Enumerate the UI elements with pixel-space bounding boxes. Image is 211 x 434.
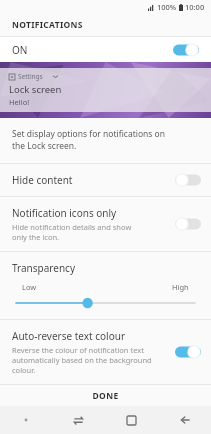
button[interactable]: Settings [0, 68, 211, 112]
staticText: Hide content [12, 173, 73, 187]
button[interactable]: Hide content [0, 164, 211, 196]
staticText: Lock screen [9, 83, 62, 96]
staticText: Reverse the colour of notification text … [12, 345, 169, 375]
button[interactable]: Notification icons only [0, 197, 211, 251]
staticText: 10:00 [185, 2, 205, 12]
staticText: High [172, 282, 189, 292]
staticText: Low [22, 282, 37, 292]
staticText: ON [12, 43, 28, 57]
button[interactable]: Auto-reverse text colour [0, 320, 211, 384]
staticText: 100% [157, 2, 177, 12]
button[interactable]: Hide navigation bar [0, 406, 52, 434]
staticText: Settings [18, 72, 43, 81]
staticText: DONE [92, 390, 119, 402]
staticText: Hello! [9, 97, 30, 107]
button[interactable]: Back [158, 406, 211, 434]
button[interactable]: Transparency slider [12, 297, 199, 309]
staticText: Set display options for notifications on… [12, 128, 166, 152]
staticText: Transparency [12, 261, 75, 275]
button[interactable]: DONE [0, 385, 211, 406]
staticText: Notification icons only [12, 206, 117, 220]
staticText: Auto-reverse text colour [12, 329, 126, 343]
button[interactable]: ON [0, 37, 211, 62]
staticText: NOTIFICATIONS [12, 19, 83, 31]
staticText: Hide notification details and show only … [12, 222, 132, 242]
button[interactable]: Recents [52, 406, 105, 434]
button[interactable]: Home [105, 406, 158, 434]
